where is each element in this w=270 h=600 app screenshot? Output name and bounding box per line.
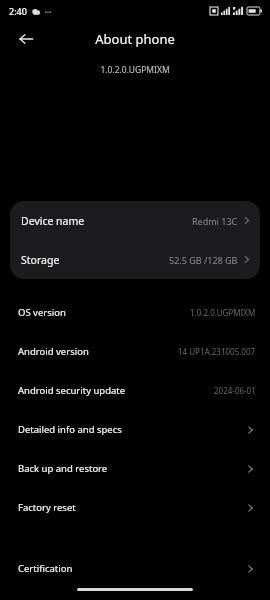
staticText: Factory reset xyxy=(18,501,76,514)
button[interactable]: OS version xyxy=(0,293,270,332)
staticText: 14 UP1A.231005.007 xyxy=(178,346,256,357)
staticText: Back up and restore xyxy=(18,462,108,475)
staticText: Device name xyxy=(21,214,85,228)
button[interactable]: Android security update xyxy=(0,371,270,410)
button[interactable]: Certification xyxy=(0,549,270,588)
button[interactable]: Android version xyxy=(0,332,270,371)
button[interactable]: Detailed info and specs xyxy=(0,410,270,449)
button[interactable]: Back xyxy=(12,25,40,53)
button[interactable]: Factory reset xyxy=(0,488,270,527)
staticText: Certification xyxy=(18,562,73,575)
button[interactable]: Device name xyxy=(10,201,260,240)
staticText: OS version xyxy=(18,306,66,319)
staticText: Redmi 13C xyxy=(192,215,238,227)
staticText: Android security update xyxy=(18,384,126,397)
staticText: 2:40 xyxy=(9,5,27,17)
staticText: 52.5 GB /128 GB xyxy=(169,254,238,266)
button[interactable]: Storage xyxy=(10,240,260,279)
staticText: Storage xyxy=(21,253,60,267)
staticText: 1.0.2.0.UGPMIXM xyxy=(190,307,256,318)
staticText: Android version xyxy=(18,345,89,358)
staticText: 1.0.2.0.UGPMIXM xyxy=(0,64,270,76)
button[interactable]: Back up and restore xyxy=(0,449,270,488)
staticText: Detailed info and specs xyxy=(18,423,122,436)
staticText: About phone xyxy=(95,30,175,48)
staticText: 2024-06-01 xyxy=(214,385,256,396)
